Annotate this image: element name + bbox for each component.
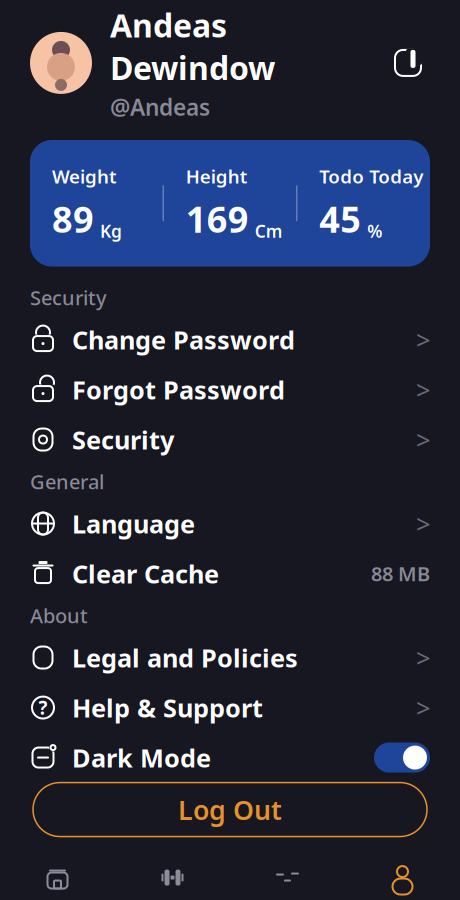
staticText: ? (38, 695, 47, 720)
button[interactable]: Dark Mode (0, 733, 460, 783)
staticText: 169 (186, 195, 249, 243)
button[interactable]: Forgot Password (0, 365, 460, 415)
staticText: Legal and Policies (72, 641, 298, 674)
staticText: @Andeas (110, 92, 210, 122)
button[interactable]: Change Password (0, 315, 460, 365)
staticText: 45 (319, 195, 361, 243)
button[interactable]: Edit profile (386, 41, 430, 85)
staticText: % (367, 219, 382, 242)
button[interactable]: Statistics (230, 865, 345, 900)
staticText: > (416, 691, 430, 724)
staticText: Kg (100, 219, 122, 242)
button[interactable]: Legal and Policies (0, 633, 460, 683)
button[interactable]: Workout (115, 865, 230, 900)
button[interactable]: Dark Mode toggle (374, 743, 430, 773)
staticText: Weight (52, 164, 117, 189)
staticText: Dark Mode (72, 741, 211, 774)
staticText: > (416, 641, 430, 674)
staticText: Security (30, 284, 107, 311)
button[interactable]: Clear Cache (0, 549, 460, 599)
staticText: About (30, 602, 88, 629)
staticText: Log Out (178, 792, 282, 827)
staticText: Language (72, 507, 195, 540)
button[interactable]: Security (0, 415, 460, 465)
button[interactable]: Log Out (33, 783, 427, 837)
staticText: Forgot Password (72, 373, 285, 406)
staticText: Help & Support (72, 691, 263, 724)
staticText: Height (186, 164, 248, 189)
staticText: Todo Today (319, 164, 423, 189)
staticText: > (416, 323, 430, 356)
staticText: General (30, 468, 104, 495)
staticText: 88 MB (371, 560, 430, 587)
staticText: Change Password (72, 323, 295, 356)
staticText: Andeas Dewindow (110, 4, 275, 89)
staticText: > (416, 423, 430, 456)
staticText: > (416, 507, 430, 540)
staticText: Security (72, 423, 174, 456)
button[interactable]: ? (0, 683, 460, 733)
staticText: > (416, 373, 430, 406)
button[interactable]: Language (0, 499, 460, 549)
staticText: Clear Cache (72, 557, 219, 590)
staticText: 89 (52, 195, 94, 243)
button[interactable]: Home (0, 865, 115, 900)
button[interactable]: Profile (345, 865, 460, 900)
staticText: Cm (255, 219, 283, 242)
